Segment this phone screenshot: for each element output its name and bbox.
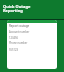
staticText: Quick Outage Reporting <box>3 4 31 13</box>
staticText: 555123 <box>9 48 18 52</box>
staticText: 123456 <box>9 36 18 40</box>
staticText: Account number <box>9 30 30 34</box>
staticText: Report outage <box>9 24 30 28</box>
staticText: Phone number <box>9 41 28 45</box>
